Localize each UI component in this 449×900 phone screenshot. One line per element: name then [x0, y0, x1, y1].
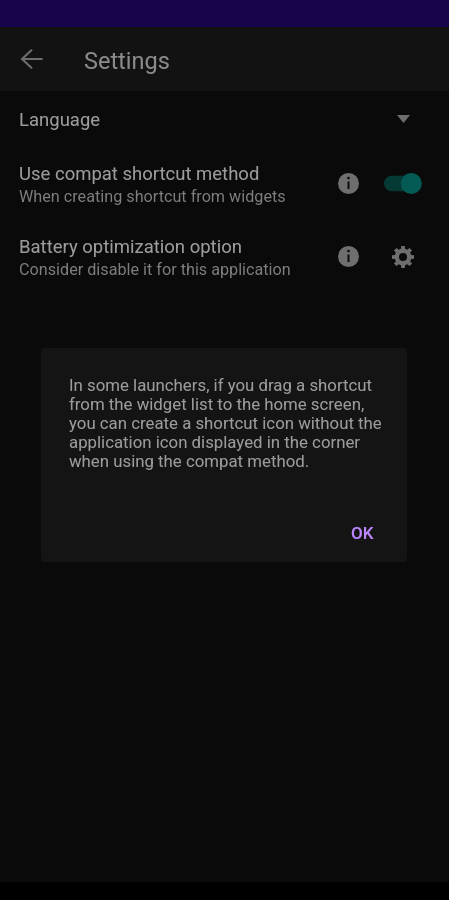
button[interactable]: Battery optimization option [0, 221, 449, 294]
staticText: Battery optimization option [19, 236, 242, 258]
staticText: Use compat shortcut method [19, 163, 260, 185]
button[interactable]: OK [337, 513, 388, 553]
button[interactable]: Language [0, 91, 449, 148]
button[interactable]: Info about battery optimization [328, 236, 369, 277]
staticText: Consider disable it for this application [19, 258, 291, 280]
staticText: In some launchers, if you drag a shortcu… [69, 376, 393, 471]
staticText: OK [351, 523, 374, 543]
button[interactable]: Use compat shortcut method [0, 148, 449, 221]
staticText: Language [19, 109, 101, 131]
staticText: When creating shortcut from widgets [19, 185, 286, 207]
button[interactable]: Info about compat shortcut method [328, 163, 369, 204]
button[interactable]: Use compat shortcut method [382, 163, 423, 204]
button[interactable]: Navigate up [8, 35, 56, 83]
button[interactable]: Open battery optimization settings [382, 236, 423, 277]
staticText: Settings [84, 47, 170, 75]
